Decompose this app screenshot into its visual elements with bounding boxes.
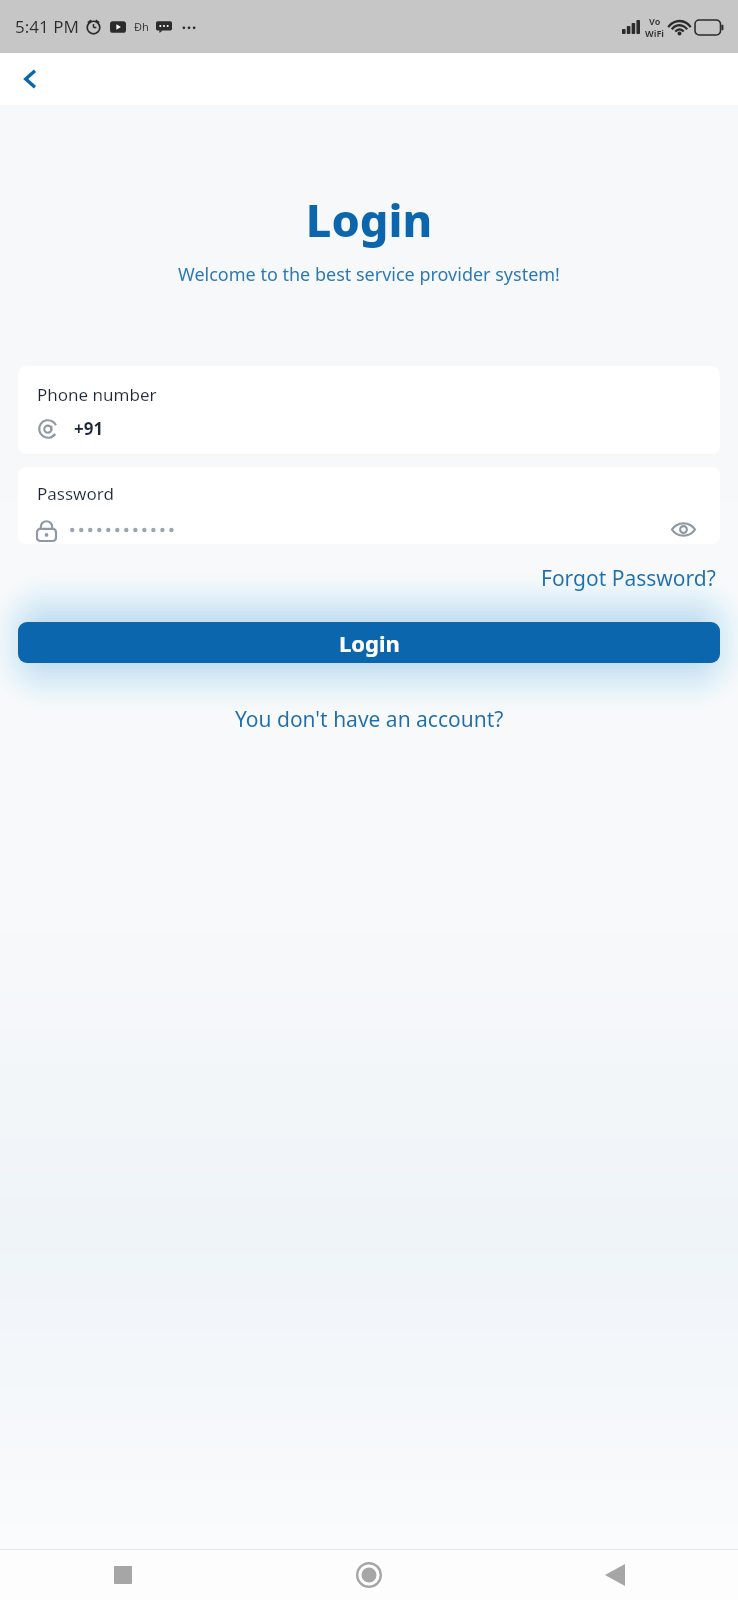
staticText: Login (339, 628, 400, 658)
staticText: Phone number (37, 383, 157, 406)
staticText: Đh (134, 19, 149, 34)
staticText: +91 (74, 417, 104, 440)
staticText: WiFi (645, 27, 665, 39)
button[interactable]: Home (345, 1551, 393, 1599)
button[interactable]: Back (8, 56, 54, 102)
staticText: Welcome to the best service provider sys… (0, 262, 738, 287)
button[interactable]: You don't have an account? (227, 701, 512, 738)
button[interactable]: Login (18, 622, 720, 663)
button[interactable]: Phone number (18, 366, 720, 454)
button[interactable]: Recent apps (99, 1551, 147, 1599)
button[interactable]: Forgot Password? (535, 560, 722, 597)
staticText: Password (37, 482, 114, 505)
staticText: Forgot Password? (541, 564, 716, 593)
staticText: 5:41 PM (15, 15, 79, 38)
button[interactable]: Password (18, 467, 720, 544)
button[interactable]: Show password (665, 515, 701, 544)
button[interactable]: Back (591, 1551, 639, 1599)
staticText: Vo (649, 15, 661, 27)
staticText: Login (0, 189, 738, 250)
staticText: You don't have an account? (235, 705, 504, 734)
